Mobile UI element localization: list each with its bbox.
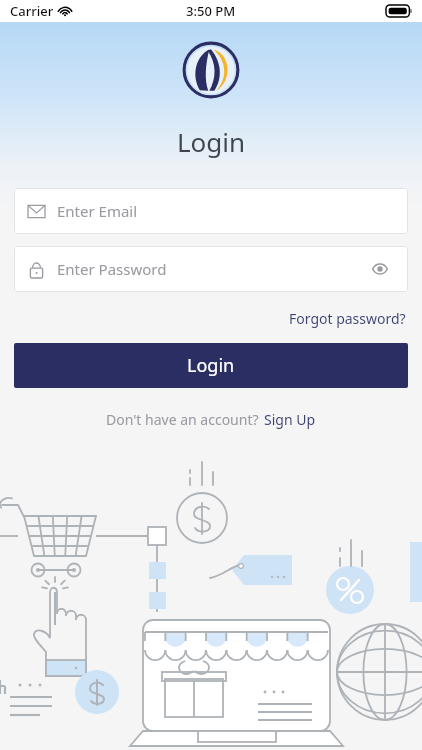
button[interactable]: Forgot password? [287,306,408,331]
staticText: Login [0,124,422,159]
staticText: Enter Password [57,259,167,279]
staticText: 3:50 PM [186,2,236,20]
staticText: Login [187,353,235,378]
button[interactable]: Enter Password [14,246,408,292]
button[interactable]: Login [14,343,408,388]
button[interactable]: Show password [366,255,394,283]
staticText: Carrier [10,2,54,20]
button[interactable]: Enter Email [14,188,408,234]
staticText: Forgot password? [289,309,406,328]
staticText: Enter Email [57,201,138,221]
staticText: Don't have an account? [106,410,263,429]
staticText: Sign Up [264,410,316,429]
button[interactable]: Sign Up [263,408,317,431]
